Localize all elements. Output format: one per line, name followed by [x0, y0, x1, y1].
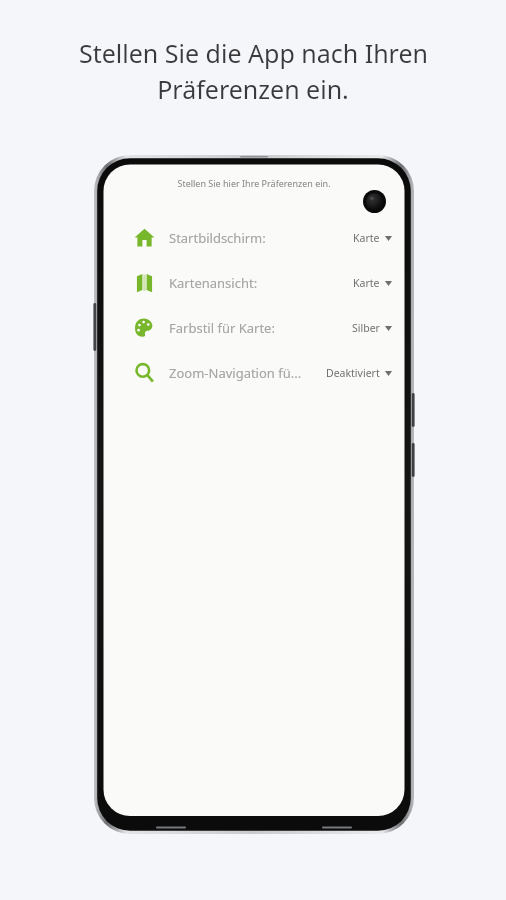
- staticText: Startbildschirm:: [169, 229, 353, 247]
- button[interactable]: Kartenansicht:: [104, 260, 404, 305]
- staticText: Farbstil für Karte:: [169, 319, 352, 337]
- staticText: Karte: [353, 231, 380, 245]
- staticText: Stellen Sie hier Ihre Präferenzen ein.: [177, 177, 331, 189]
- staticText: Karte: [353, 276, 380, 290]
- button[interactable]: Zoom-Navigation fü...: [104, 350, 404, 395]
- staticText: Kartenansicht:: [169, 274, 353, 292]
- staticText: Silber: [352, 321, 380, 335]
- button[interactable]: Startbildschirm:: [104, 215, 404, 260]
- staticText: Deaktiviert: [326, 366, 380, 380]
- staticText: Zoom-Navigation fü...: [169, 364, 326, 382]
- button[interactable]: Farbstil für Karte:: [104, 305, 404, 350]
- staticText: Stellen Sie die App nach Ihren: [79, 36, 428, 70]
- staticText: Präferenzen ein.: [157, 72, 349, 106]
